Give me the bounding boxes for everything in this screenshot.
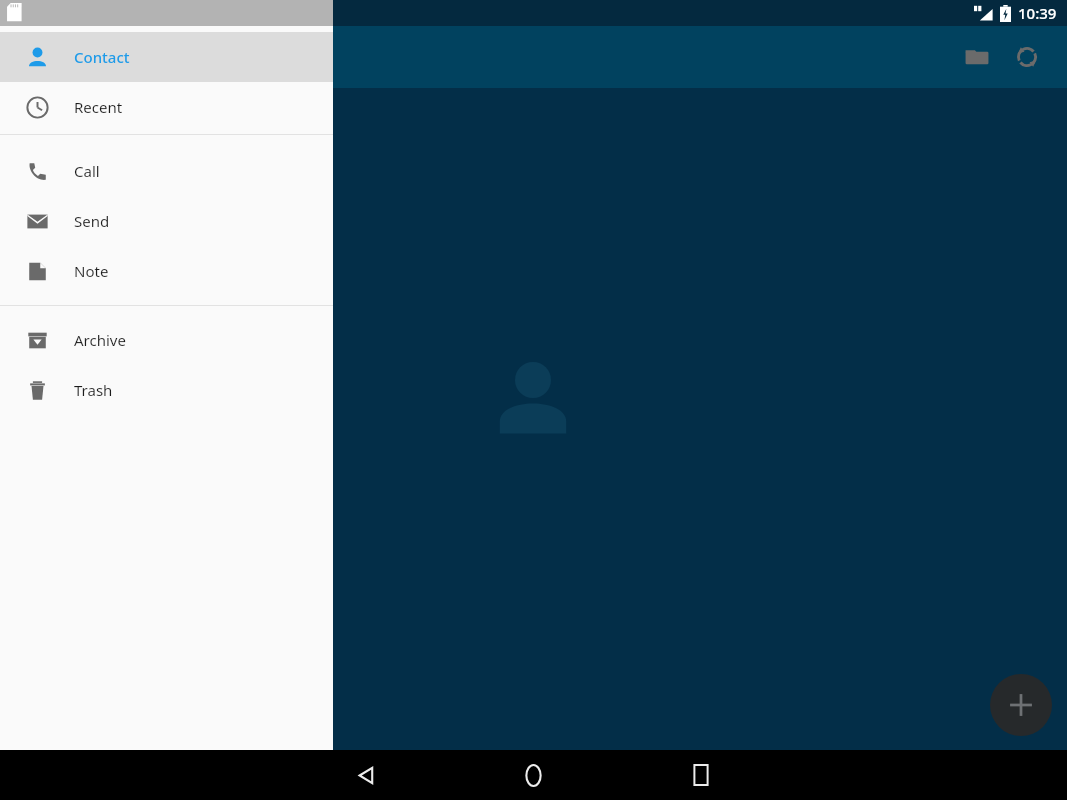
staticText: Note xyxy=(74,261,109,281)
button[interactable]: Send xyxy=(0,196,333,246)
staticText: Call xyxy=(74,161,100,181)
staticText: Send xyxy=(74,211,110,231)
staticText: 10:39 xyxy=(1018,3,1057,23)
button[interactable]: Add xyxy=(990,674,1052,736)
button[interactable]: Call xyxy=(0,146,333,196)
staticText: Contact xyxy=(74,47,130,67)
button[interactable]: Trash xyxy=(0,365,333,415)
button[interactable]: Contact xyxy=(0,32,333,82)
button[interactable]: Home xyxy=(513,750,553,800)
button[interactable]: Folder xyxy=(953,33,1001,81)
button[interactable]: Note xyxy=(0,246,333,296)
button[interactable]: Sync xyxy=(1003,33,1051,81)
button[interactable]: Recent apps xyxy=(681,750,721,800)
button[interactable]: Archive xyxy=(0,315,333,365)
staticText: Recent xyxy=(74,97,123,117)
button[interactable]: Back xyxy=(345,750,385,800)
staticText: Archive xyxy=(74,330,126,350)
staticText: Trash xyxy=(74,380,113,400)
button[interactable]: Recent xyxy=(0,82,333,132)
